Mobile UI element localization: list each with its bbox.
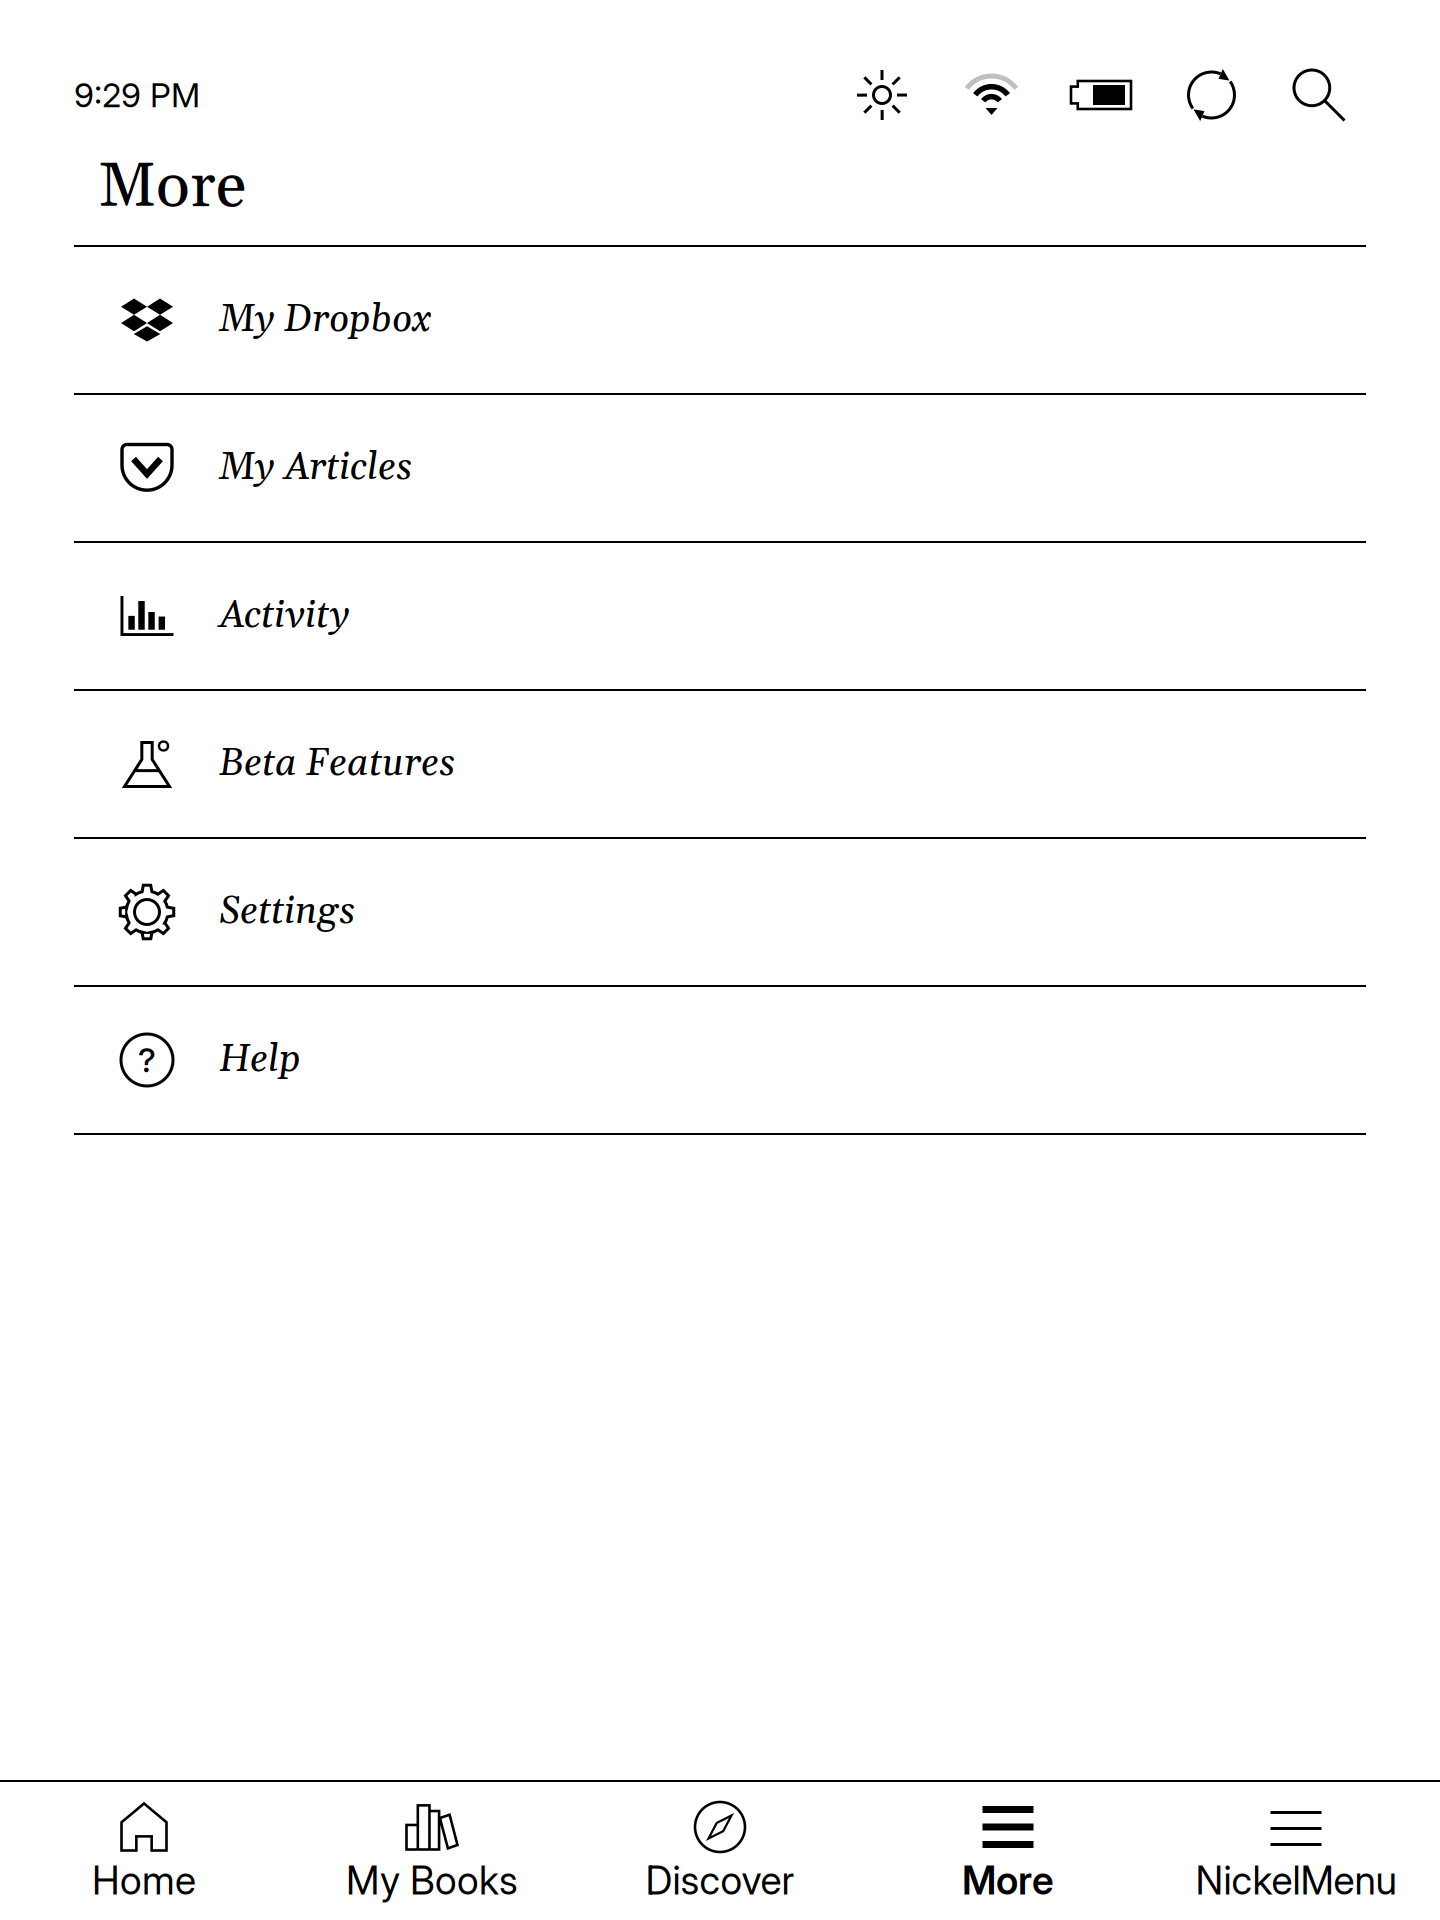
button[interactable]: Discover bbox=[576, 1782, 864, 1920]
staticText: Home bbox=[92, 1857, 196, 1904]
staticText: 9:29 PM bbox=[74, 75, 200, 115]
staticText: Settings bbox=[219, 888, 355, 936]
staticText: My Dropbox bbox=[219, 296, 431, 344]
button[interactable]: My Books bbox=[288, 1782, 576, 1920]
button[interactable]: Battery bbox=[1046, 60, 1156, 130]
staticText: More bbox=[98, 148, 246, 227]
button[interactable]: Search bbox=[1267, 60, 1371, 130]
staticText: Beta Features bbox=[219, 740, 455, 788]
button[interactable]: Activity bbox=[0, 543, 1440, 689]
button[interactable]: Sync bbox=[1156, 60, 1267, 130]
staticText: Help bbox=[219, 1036, 301, 1084]
button[interactable]: NickelMenu bbox=[1152, 1782, 1440, 1920]
staticText: Discover bbox=[645, 1857, 794, 1904]
staticText: My Books bbox=[346, 1857, 518, 1904]
staticText: My Articles bbox=[219, 444, 412, 492]
staticText: ? bbox=[138, 1040, 156, 1080]
button[interactable]: Brightness bbox=[827, 60, 937, 130]
staticText: Activity bbox=[219, 592, 350, 640]
button[interactable]: Home bbox=[0, 1782, 288, 1920]
staticText: More bbox=[962, 1857, 1054, 1904]
button[interactable]: Beta Features bbox=[0, 691, 1440, 837]
staticText: NickelMenu bbox=[1195, 1857, 1396, 1904]
button[interactable]: My Dropbox bbox=[0, 247, 1440, 393]
button[interactable]: Settings bbox=[0, 839, 1440, 985]
button[interactable]: My Articles bbox=[0, 395, 1440, 541]
button[interactable]: Wi-Fi bbox=[937, 60, 1046, 130]
button[interactable]: More bbox=[864, 1782, 1152, 1920]
button[interactable]: ? bbox=[0, 987, 1440, 1133]
